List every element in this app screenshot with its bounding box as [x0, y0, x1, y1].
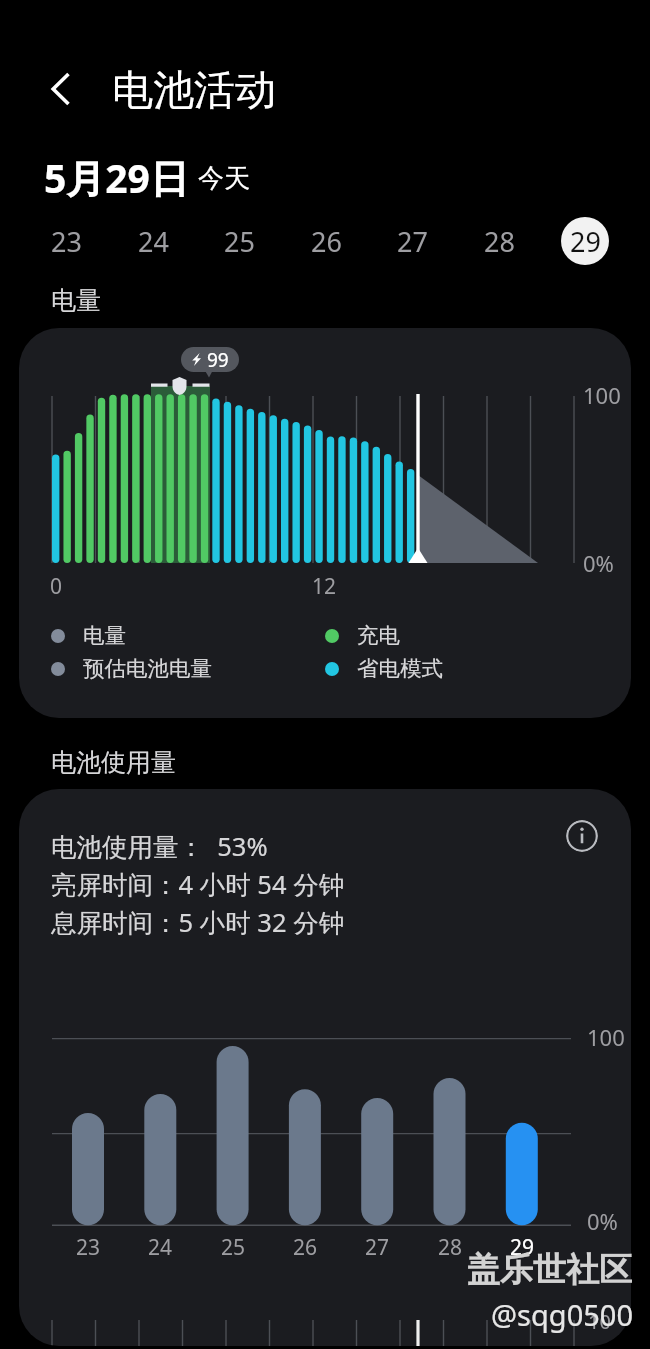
- staticText: 26: [293, 1233, 318, 1262]
- button[interactable]: 23: [42, 217, 90, 265]
- staticText: 100: [587, 1022, 625, 1052]
- staticText: 28: [438, 1233, 463, 1262]
- staticText: 电池活动: [112, 65, 276, 117]
- button[interactable]: Info: [566, 820, 598, 852]
- staticText: @sqg0500: [491, 1295, 633, 1334]
- button[interactable]: 25: [215, 217, 263, 265]
- button[interactable]: Back: [36, 64, 86, 114]
- staticText: 0%: [583, 548, 614, 578]
- button[interactable]: 电量: [51, 622, 126, 649]
- staticText: 今天: [198, 162, 250, 195]
- staticText: 电池使用量： 53%: [51, 829, 268, 864]
- staticText: 充电: [357, 622, 400, 649]
- staticText: 0%: [587, 1206, 618, 1236]
- staticText: 24: [138, 223, 169, 260]
- staticText: 23: [76, 1233, 101, 1262]
- staticText: 27: [365, 1233, 390, 1262]
- button[interactable]: Charging 99 percent: [19, 328, 631, 718]
- button[interactable]: 省电模式: [325, 655, 443, 682]
- button[interactable]: 24: [129, 217, 177, 265]
- staticText: 电池使用量: [51, 747, 176, 778]
- button[interactable]: 29: [561, 217, 609, 265]
- button[interactable]: 充电: [325, 622, 400, 649]
- staticText: 99: [207, 347, 229, 372]
- button[interactable]: 预估电池电量: [51, 655, 212, 682]
- staticText: 26: [311, 223, 342, 260]
- staticText: 24: [148, 1233, 173, 1262]
- button[interactable]: Charging 99 percent: [181, 347, 239, 372]
- staticText: 29: [510, 1233, 535, 1262]
- staticText: 电量: [83, 622, 126, 649]
- staticText: 亮屏时间：4 小时 54 分钟: [51, 867, 345, 902]
- staticText: 盖乐世社区: [467, 1249, 632, 1291]
- staticText: 省电模式: [357, 655, 443, 682]
- staticText: 预估电池电量: [83, 655, 212, 682]
- staticText: 5月29日: [44, 151, 189, 204]
- staticText: 100: [583, 380, 621, 410]
- button[interactable]: 27: [388, 217, 436, 265]
- button[interactable]: 28: [475, 217, 523, 265]
- staticText: 28: [484, 223, 515, 260]
- button[interactable]: 电池使用量： 53%: [19, 789, 631, 1346]
- staticText: 27: [397, 223, 428, 260]
- staticText: 息屏时间：5 小时 32 分钟: [51, 905, 345, 940]
- staticText: 29: [570, 223, 601, 260]
- staticText: 电量: [51, 285, 101, 316]
- staticText: 10: [588, 1308, 611, 1335]
- staticText: 25: [224, 223, 255, 260]
- staticText: 25: [221, 1233, 246, 1262]
- staticText: 23: [51, 223, 82, 260]
- button[interactable]: 26: [302, 217, 350, 265]
- staticText: 12: [312, 572, 337, 601]
- staticText: 0: [50, 572, 63, 601]
